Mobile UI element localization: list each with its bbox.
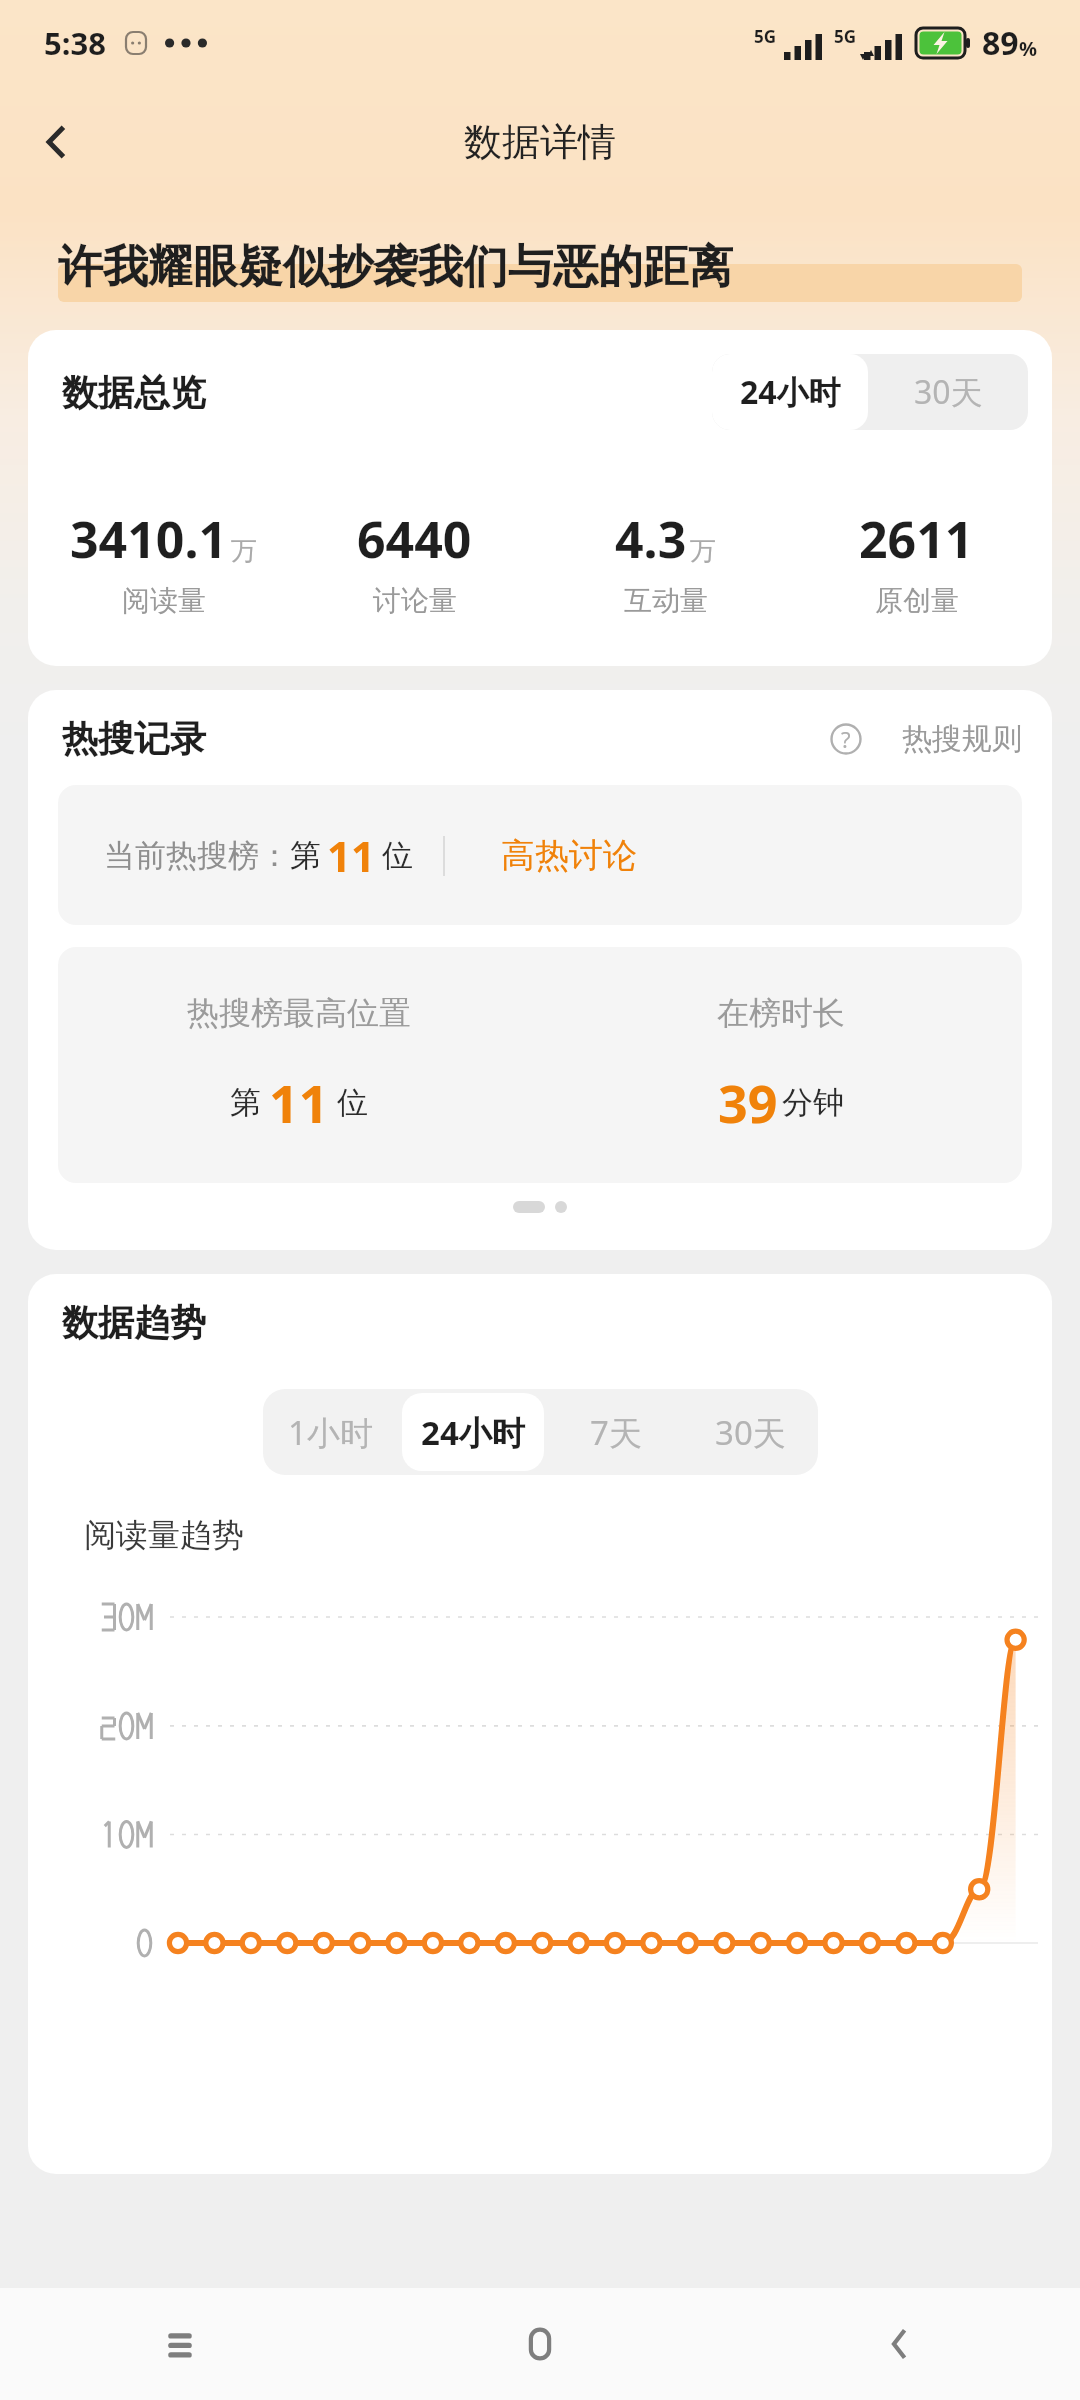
button[interactable]: Recent apps <box>0 2288 360 2400</box>
staticText: 第 <box>290 836 321 875</box>
staticText: 在榜时长 <box>717 993 845 1033</box>
staticText: 互动量 <box>624 583 708 618</box>
button[interactable]: 当前热搜榜： <box>58 785 1022 925</box>
staticText: 1小时 <box>288 1410 373 1455</box>
staticText: 4.3 <box>615 505 687 573</box>
button[interactable]: Back <box>14 99 100 185</box>
staticText: ? <box>841 724 851 754</box>
staticText: 分钟 <box>782 1083 844 1122</box>
staticText: 7天 <box>590 1410 642 1455</box>
staticText: 30天 <box>715 1410 786 1455</box>
button[interactable]: 7天 <box>552 1393 679 1471</box>
staticText: 5:38 <box>44 22 106 64</box>
staticText: % <box>1019 35 1038 62</box>
button[interactable]: 4.3 <box>540 505 791 618</box>
staticText: 数据总览 <box>62 370 206 415</box>
staticText: 5G <box>754 25 777 48</box>
staticText: 数据详情 <box>464 118 616 166</box>
staticText: 11 <box>327 827 376 884</box>
staticText: 5G <box>834 25 857 48</box>
staticText: 高热讨论 <box>501 834 637 877</box>
staticText: 万 <box>690 535 716 568</box>
button[interactable]: 热搜榜最高位置 <box>58 947 1022 1183</box>
staticText: 当前热搜榜： <box>104 836 290 875</box>
button[interactable]: 2611 <box>791 505 1042 618</box>
button[interactable]: 24小时 <box>402 1393 544 1471</box>
staticText: 6440 <box>357 505 472 573</box>
staticText: 讨论量 <box>373 583 457 618</box>
staticText: 万 <box>231 535 257 568</box>
staticText: 24小时 <box>421 1410 525 1455</box>
button[interactable]: 6440 <box>289 505 540 618</box>
staticText: 热搜记录 <box>62 716 206 761</box>
button[interactable]: 30天 <box>687 1393 814 1471</box>
staticText: 原创量 <box>875 583 959 618</box>
staticText: 39 <box>718 1067 778 1138</box>
staticText: 阅读量 <box>122 583 206 618</box>
staticText: 位 <box>382 836 413 875</box>
staticText: 热搜规则 <box>902 720 1022 758</box>
staticText: 第 <box>230 1083 261 1122</box>
button[interactable]: 24小时 <box>712 354 868 430</box>
button[interactable]: Home <box>360 2288 720 2400</box>
staticText: 阅读量趋势 <box>84 1515 244 1555</box>
button[interactable]: 1小时 <box>267 1393 394 1471</box>
button[interactable]: 30天 <box>868 354 1028 430</box>
staticText: 89 <box>982 21 1019 65</box>
staticText: 2611 <box>859 505 974 573</box>
staticText: 位 <box>337 1083 368 1122</box>
button[interactable]: ? <box>830 720 1022 758</box>
staticText: 30天 <box>914 370 983 414</box>
staticText: 3410.1 <box>70 505 228 573</box>
staticText: 许我耀眼疑似抄袭我们与恶的距离 <box>58 239 733 296</box>
button[interactable]: Back <box>720 2288 1080 2400</box>
button[interactable]: 3410.1 <box>38 505 289 618</box>
staticText: 11 <box>269 1067 329 1138</box>
staticText: 24小时 <box>740 370 841 414</box>
staticText: 热搜榜最高位置 <box>187 993 411 1033</box>
staticText: 数据趋势 <box>62 1300 206 1345</box>
